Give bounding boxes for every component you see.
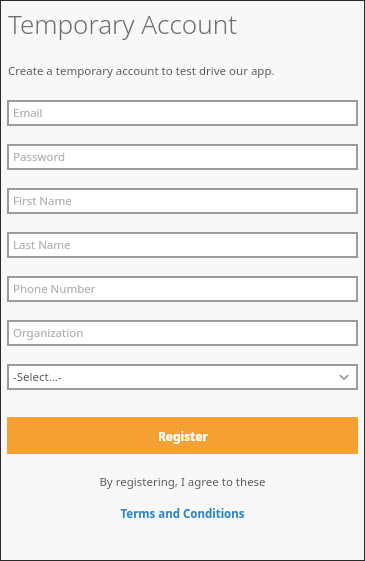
button[interactable]: -Select...- — [7, 364, 358, 390]
button[interactable]: First Name — [7, 188, 358, 214]
other: Open dropdown — [338, 371, 350, 383]
staticText: Password — [13, 149, 66, 165]
staticText: Last Name — [13, 237, 71, 253]
staticText: By registering, I agree to these — [1, 474, 364, 490]
button[interactable]: Terms and Conditions — [120, 506, 245, 522]
button[interactable]: Last Name — [7, 232, 358, 258]
staticText: Phone Number — [13, 281, 96, 297]
staticText: -Select...- — [13, 369, 62, 385]
staticText: Terms and Conditions — [120, 506, 245, 522]
staticText: Email — [13, 105, 43, 121]
button[interactable]: Email — [7, 100, 358, 126]
staticText: Organization — [13, 325, 84, 341]
button[interactable]: Phone Number — [7, 276, 358, 302]
staticText: Register — [158, 428, 208, 444]
button[interactable]: Password — [7, 144, 358, 170]
staticText: First Name — [13, 193, 72, 209]
button[interactable]: Register — [7, 417, 358, 454]
staticText: Create a temporary account to test drive… — [8, 63, 275, 79]
button[interactable]: Organization — [7, 320, 358, 346]
staticText: Temporary Account — [8, 6, 237, 41]
